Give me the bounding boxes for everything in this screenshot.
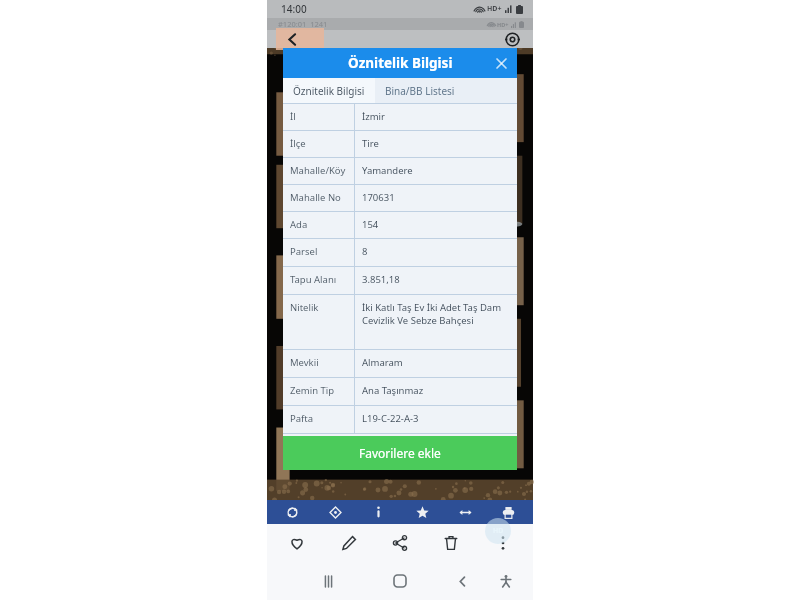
staticText: İki Katlı Taş Ev İki Adet Taş Dam Cevizl…	[362, 301, 511, 327]
button[interactable]: Öznitelik Bilgisi	[283, 78, 375, 103]
staticText: Yamandere	[362, 164, 413, 177]
button[interactable]: Back	[281, 28, 303, 50]
button[interactable]: Share	[379, 524, 421, 562]
button[interactable]: Delete	[430, 524, 472, 562]
button[interactable]: Recents	[315, 568, 341, 594]
staticText: Zemin Tip	[290, 384, 335, 397]
staticText: Mevkii	[290, 356, 319, 369]
staticText: Öznitelik Bilgisi	[293, 84, 365, 98]
staticText: Öznitelik Bilgisi	[348, 54, 453, 72]
button[interactable]: Accessibility	[493, 568, 519, 594]
button[interactable]: More options	[482, 524, 524, 562]
staticText: HD+	[487, 4, 502, 14]
button[interactable]: Info	[360, 500, 396, 524]
staticText: Ada	[290, 218, 308, 231]
button[interactable]: Locate	[317, 500, 353, 524]
staticText: İzmir	[362, 110, 385, 123]
staticText: Bina/BB Listesi	[385, 84, 455, 98]
staticText: 154	[362, 218, 379, 231]
button[interactable]: Close	[491, 53, 511, 73]
staticText: Almaram	[362, 356, 403, 369]
staticText: Mahalle No	[290, 191, 341, 204]
staticText: L19-C-22-A-3	[362, 412, 419, 425]
button[interactable]: Back	[449, 568, 475, 594]
button[interactable]: Favourite	[276, 524, 318, 562]
button[interactable]: Measure	[447, 500, 483, 524]
button[interactable]: Home	[387, 568, 413, 594]
staticText: Mahalle/Köy	[290, 164, 346, 177]
staticText: 8	[362, 245, 368, 258]
staticText: Ana Taşınmaz	[362, 384, 424, 397]
staticText: 14:00	[281, 2, 307, 16]
staticText: Nitelik	[290, 301, 319, 314]
staticText: 170631	[362, 191, 395, 204]
staticText: Pafta	[290, 412, 314, 425]
button[interactable]: Favorilere ekle	[283, 436, 517, 470]
button[interactable]: Refresh	[274, 500, 310, 524]
button[interactable]: Edit	[328, 524, 370, 562]
button[interactable]: Bina/BB Listesi	[375, 78, 465, 103]
button[interactable]: Locate	[501, 28, 523, 50]
staticText: Parsel	[290, 245, 318, 258]
staticText: Favorilere ekle	[359, 445, 441, 461]
staticText: #120:01 1241	[278, 19, 328, 29]
staticText: İlçe	[290, 137, 306, 150]
staticText: Tire	[362, 137, 379, 150]
staticText: 3.851,18	[362, 273, 400, 286]
button[interactable]: Print	[490, 500, 526, 524]
staticText: HD+	[497, 21, 509, 28]
staticText: İl	[290, 110, 296, 123]
button[interactable]: Favourites	[404, 500, 440, 524]
staticText: Tapu Alanı	[290, 273, 337, 286]
